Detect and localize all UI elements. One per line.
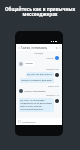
staticText: Да, Рид. На площадке следующая по ее дей… <box>20 99 53 111</box>
staticText: Общайтесь как в привычных мессенджерах <box>1 6 79 18</box>
staticText: Сегодня 10:05 <box>46 68 59 71</box>
staticText: Сообщение <box>22 120 36 123</box>
staticText: Таисия <box>46 57 54 60</box>
staticText: Можно отправить документ <box>21 79 53 82</box>
button[interactable]: Video call <box>56 47 58 49</box>
button[interactable]: Attach <box>18 120 21 123</box>
staticText: Привет <box>25 62 34 65</box>
staticText: Сегодня 11:14 <box>46 94 59 97</box>
staticText: Таисия, незнакомец <box>21 46 48 50</box>
button[interactable]: Back <box>17 46 21 50</box>
staticText: Сегодня <box>34 52 44 55</box>
staticText: Таисия, незнакомец <box>24 90 46 93</box>
staticText: Вчера 18:40 <box>48 85 59 88</box>
staticText: Да, вот так всё просто! <box>27 73 53 76</box>
